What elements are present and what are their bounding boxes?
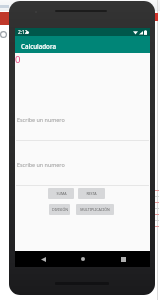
button[interactable]: DIVISIÓN bbox=[49, 204, 70, 215]
button[interactable]: MULTIPLICACIÓN bbox=[76, 204, 114, 215]
button[interactable]: Back bbox=[37, 253, 49, 265]
staticText: MULTIPLICACIÓN bbox=[80, 207, 110, 212]
button[interactable]: Home bbox=[77, 253, 89, 265]
button[interactable]: SUMA bbox=[48, 188, 74, 199]
staticText: SUMA bbox=[56, 191, 67, 196]
staticText: Escribe un numero bbox=[17, 161, 65, 168]
staticText: DIVISIÓN bbox=[52, 207, 68, 212]
button[interactable]: RESTA bbox=[78, 188, 105, 199]
staticText: 0 bbox=[15, 53, 21, 66]
staticText: Escribe un numero bbox=[17, 116, 65, 123]
staticText: 2:12 bbox=[18, 29, 28, 36]
button[interactable]: Recent apps bbox=[117, 253, 129, 265]
staticText: RESTA bbox=[86, 191, 97, 196]
staticText: Calculadora bbox=[21, 42, 56, 50]
